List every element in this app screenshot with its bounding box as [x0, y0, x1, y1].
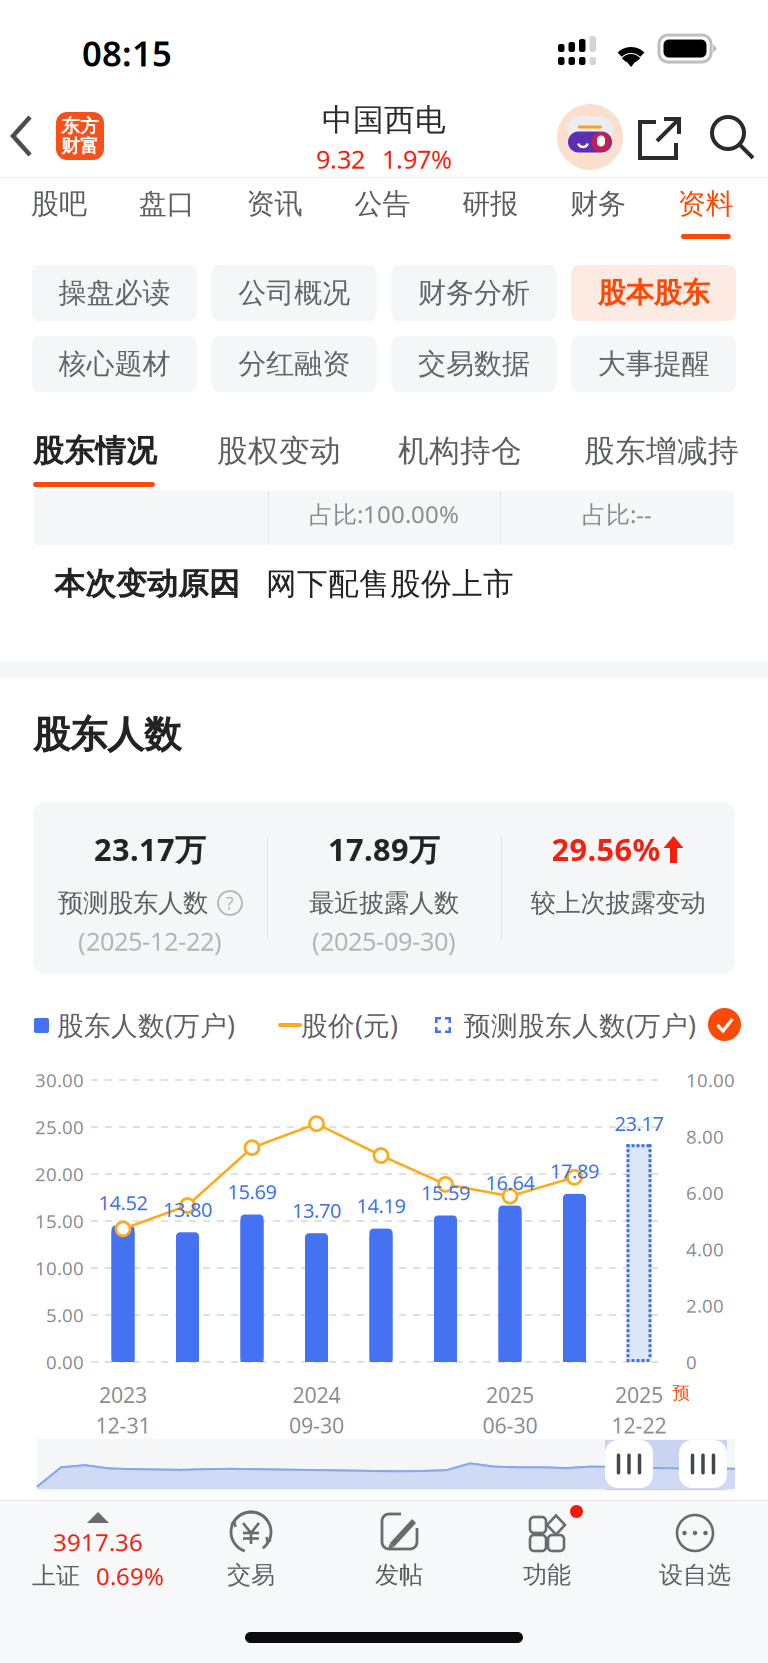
staticText: 15.00 [35, 1209, 84, 1233]
staticText: 0.00 [46, 1350, 84, 1374]
staticText: 5.00 [46, 1303, 84, 1327]
staticText: 1.97% [382, 142, 452, 176]
button[interactable]: 财务分析 [391, 265, 556, 321]
button[interactable]: 交易数据 [391, 336, 556, 392]
staticText: 最近披露人数 [309, 887, 459, 918]
button[interactable]: East Money [56, 112, 104, 160]
staticText: 2.00 [686, 1293, 724, 1318]
button[interactable]: 机构持仓 [398, 430, 524, 492]
staticText: 15.69 [227, 1178, 276, 1205]
button[interactable]: 研报 [436, 182, 544, 248]
staticText: 17.89万 [328, 829, 440, 869]
staticText: 股东增减持 [584, 432, 739, 470]
button[interactable]: 股东情况 [33, 430, 159, 492]
staticText: 股东人数 [33, 712, 181, 758]
button[interactable]: 交易 [166, 1504, 336, 1604]
button[interactable]: Share [635, 113, 685, 163]
staticText: 盘口 [139, 187, 195, 221]
staticText: 09-30 [289, 1411, 344, 1439]
button[interactable]: Range end [679, 1440, 727, 1488]
button[interactable]: 股吧 [5, 182, 113, 248]
staticText: 0 [686, 1350, 697, 1374]
staticText: 06-30 [482, 1411, 537, 1439]
button[interactable]: 资讯 [221, 182, 329, 248]
button[interactable]: 公告 [328, 182, 436, 248]
staticText: 股价(元) [301, 1007, 398, 1043]
staticText: 财务 [570, 187, 626, 221]
button[interactable]: 公司概况 [212, 265, 377, 321]
staticText: 08:15 [82, 30, 172, 76]
button[interactable]: Range start [605, 1440, 653, 1488]
staticText: 12-22 [611, 1411, 666, 1439]
staticText: 股东情况 [33, 432, 157, 470]
staticText: 29.56% [551, 829, 660, 869]
staticText: 12-31 [95, 1411, 150, 1439]
staticText: 13.80 [163, 1196, 212, 1223]
staticText: ? [226, 891, 234, 914]
staticText: 14.52 [98, 1189, 147, 1216]
staticText: 网下配售股份上市 [266, 565, 514, 603]
button[interactable]: 股东增减持 [584, 430, 742, 492]
staticText: 设自选 [659, 1560, 731, 1590]
button[interactable]: 资料 [652, 182, 760, 248]
button[interactable]: 财务 [544, 182, 652, 248]
staticText: 机构持仓 [398, 432, 522, 470]
staticText: 10.00 [35, 1256, 84, 1280]
staticText: 东方 [61, 114, 99, 137]
staticText: 16.64 [485, 1169, 534, 1196]
staticText: 股东人数(万户) [57, 1007, 235, 1043]
staticText: 2024 [292, 1381, 340, 1409]
button[interactable]: AI assistant [557, 104, 623, 170]
button[interactable]: 大事提醒 [571, 336, 736, 392]
button[interactable]: 设自选 [610, 1504, 768, 1604]
staticText: 预测股东人数(万户) [464, 1007, 696, 1043]
staticText: 2023 [99, 1381, 147, 1409]
staticText: 2025 [615, 1381, 663, 1409]
button[interactable]: Back [4, 105, 64, 167]
staticText: 股吧 [31, 187, 87, 221]
button[interactable]: 3917.36 [0, 1504, 196, 1604]
staticText: 公告 [354, 187, 410, 221]
staticText: 9.32 [316, 142, 365, 176]
button[interactable]: 盘口 [113, 182, 221, 248]
staticText: 30.00 [35, 1068, 84, 1092]
staticText: 17.89 [550, 1158, 599, 1184]
staticText: 股本股东 [598, 276, 710, 310]
button[interactable]: Search [707, 113, 757, 163]
staticText: 14.19 [356, 1192, 405, 1219]
staticText: 25.00 [35, 1115, 84, 1139]
button[interactable]: 功能 [462, 1504, 632, 1604]
staticText: 23.17万 [94, 829, 206, 869]
staticText: 财务分析 [418, 276, 530, 310]
staticText: 20.00 [35, 1162, 84, 1186]
staticText: 15.59 [421, 1179, 470, 1206]
staticText: 交易数据 [418, 347, 530, 381]
button[interactable]: 股权变动 [217, 430, 343, 492]
staticText: 3917.36 [53, 1526, 143, 1558]
staticText: 0.69% [96, 1560, 164, 1592]
staticText: 占比:-- [582, 498, 652, 530]
staticText: 13.70 [292, 1197, 341, 1223]
button[interactable]: 股本股东 [571, 265, 736, 321]
button[interactable]: 操盘必读 [32, 265, 197, 321]
staticText: (2025-12-22) [78, 924, 222, 958]
staticText: 上证 [32, 1561, 80, 1591]
staticText: 10.00 [686, 1068, 735, 1092]
staticText: 操盘必读 [58, 276, 170, 310]
staticText: 公司概况 [238, 276, 350, 310]
staticText: 6.00 [686, 1180, 724, 1205]
staticText: 财富 [61, 134, 99, 157]
staticText: 占比:100.00% [309, 498, 459, 530]
button[interactable]: 核心题材 [32, 336, 197, 392]
staticText: 发帖 [375, 1560, 423, 1590]
button[interactable]: 分红融资 [212, 336, 377, 392]
staticText: 中国西电 [322, 101, 446, 139]
staticText: 23.17 [614, 1110, 663, 1136]
staticText: 预测股东人数 [58, 887, 208, 918]
staticText: 核心题材 [58, 347, 170, 381]
staticText: 较上次披露变动 [530, 887, 705, 918]
staticText: 资讯 [247, 187, 303, 221]
staticText: 功能 [523, 1560, 571, 1590]
button[interactable]: 发帖 [314, 1504, 484, 1604]
staticText: 预 [672, 1382, 689, 1404]
